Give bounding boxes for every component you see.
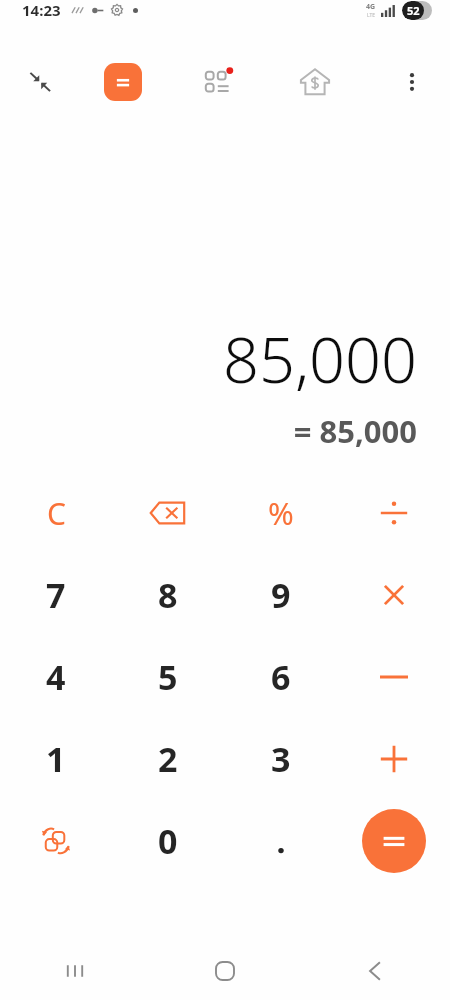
button[interactable]: Calculator xyxy=(104,63,142,101)
button[interactable]: Equals xyxy=(362,809,426,873)
button[interactable]: Plus xyxy=(358,723,430,795)
staticText: 4G xyxy=(366,2,376,12)
button[interactable]: 6 xyxy=(245,641,317,713)
button[interactable]: Back xyxy=(300,942,450,1000)
button[interactable]: C xyxy=(20,477,92,549)
button[interactable]: 1 xyxy=(20,723,92,795)
button[interactable]: More options xyxy=(390,60,434,104)
staticText: C xyxy=(47,493,66,534)
staticText: 2 xyxy=(158,736,178,782)
button[interactable]: 9 xyxy=(245,559,317,631)
staticText: 52 xyxy=(407,3,420,18)
button[interactable]: 3 xyxy=(245,723,317,795)
staticText: 1 xyxy=(46,736,66,782)
button[interactable]: Unit converter xyxy=(20,805,92,877)
button[interactable]: Backspace xyxy=(132,477,204,549)
button[interactable]: 5 xyxy=(132,641,204,713)
staticText: 3 xyxy=(271,736,291,782)
staticText: 14:23 xyxy=(22,0,61,20)
staticText: 85,000 xyxy=(222,316,417,402)
button[interactable]: 0 xyxy=(132,805,204,877)
button[interactable]: History xyxy=(196,59,242,105)
staticText: = 85,000 xyxy=(293,410,417,452)
button[interactable]: Decimal point xyxy=(245,805,317,877)
button[interactable]: Loan calculator xyxy=(292,59,338,105)
staticText: % xyxy=(268,492,294,534)
staticText: 4 xyxy=(46,654,66,700)
button[interactable]: 2 xyxy=(132,723,204,795)
staticText: 7 xyxy=(46,572,66,618)
button[interactable]: Minus xyxy=(358,641,430,713)
button[interactable]: Home xyxy=(150,942,300,1000)
button[interactable]: 7 xyxy=(20,559,92,631)
button[interactable]: Divide xyxy=(358,477,430,549)
staticText: 0 xyxy=(158,818,178,864)
button[interactable]: Recent apps xyxy=(0,942,150,1000)
button[interactable]: Multiply xyxy=(358,559,430,631)
staticText: 9 xyxy=(271,572,291,618)
staticText: 8 xyxy=(158,572,178,618)
button[interactable]: Collapse xyxy=(18,60,62,104)
staticText: 5 xyxy=(158,654,178,700)
staticText: 6 xyxy=(271,654,291,700)
staticText: LTE xyxy=(367,12,376,19)
button[interactable]: 4 xyxy=(20,641,92,713)
button[interactable]: 8 xyxy=(132,559,204,631)
button[interactable]: % xyxy=(245,477,317,549)
